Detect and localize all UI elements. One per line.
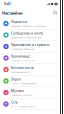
staticText: Музыка	[11, 88, 24, 93]
staticText: Безопасность	[11, 65, 34, 70]
staticText: Wi-Fi, сотовые данные	[11, 105, 35, 108]
staticText: Приложения и сервисы	[11, 42, 49, 47]
button[interactable]: Безопасность	[0, 64, 64, 75]
staticText: 9:41	[4, 2, 11, 6]
button[interactable]: Поиск	[52, 9, 59, 16]
staticText: Настройки	[2, 10, 23, 16]
staticText: Медиатека и загрузки	[11, 93, 32, 96]
button[interactable]: Сообщения и почта	[0, 29, 64, 41]
staticText: Сообщения и почта	[11, 31, 43, 35]
staticText: Сеть	[11, 100, 18, 104]
button[interactable]: Экран	[0, 75, 64, 87]
button[interactable]: Музыка	[0, 87, 64, 98]
staticText: Конфиденциальность	[11, 70, 30, 73]
staticText: Хранилище	[11, 54, 30, 58]
staticText: Осталось 5 ГБ из 50 ГБ	[11, 59, 34, 62]
staticText: Уведомления и звуки включены	[11, 36, 42, 39]
button[interactable]: Хранилище	[0, 52, 64, 64]
button[interactable]: Сеть	[0, 98, 64, 110]
button[interactable]: Приложения и сервисы	[0, 41, 64, 52]
staticText: Экран	[11, 77, 21, 81]
button[interactable]: Подписки	[0, 18, 64, 29]
staticText: Обновления приложений	[11, 47, 34, 50]
staticText: Яркость и автоблокировка	[11, 82, 36, 85]
staticText: Подписки	[11, 19, 27, 24]
staticText: Управление подписками и покупками	[11, 24, 46, 27]
